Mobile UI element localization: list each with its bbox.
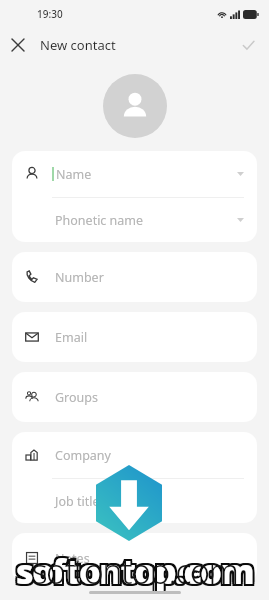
staticText: softontop.com: [0, 548, 267, 594]
staticText: Job title: [55, 493, 100, 510]
button[interactable]: Number: [12, 252, 257, 302]
staticText: softontop.com: [2, 550, 269, 596]
button[interactable]: Notes: [12, 533, 257, 583]
staticText: softontop.com: [2, 546, 269, 592]
staticText: softontop.com: [0, 548, 269, 594]
staticText: 19:30: [37, 7, 63, 21]
staticText: Groups: [55, 389, 98, 406]
staticText: Email: [55, 329, 88, 346]
button[interactable]: Save contact: [232, 29, 264, 61]
button[interactable]: Job title: [12, 479, 257, 523]
button[interactable]: Add contact photo: [103, 74, 167, 138]
staticText: softontop.com: [0, 550, 267, 596]
staticText: softontop.com: [2, 548, 269, 594]
button[interactable]: Email: [12, 312, 257, 362]
staticText: softontop.com: [0, 546, 269, 592]
staticText: Number: [55, 269, 104, 286]
staticText: Phonetic name: [55, 212, 144, 229]
button[interactable]: Name: [12, 151, 257, 197]
button[interactable]: Phonetic name: [12, 198, 257, 242]
staticText: Notes: [55, 550, 90, 567]
staticText: softontop.com: [0, 546, 267, 592]
staticText: Company: [55, 447, 111, 464]
button[interactable]: Close: [0, 28, 36, 62]
staticText: softontop.com: [0, 550, 269, 596]
staticText: softontop.com: [0, 548, 269, 594]
button[interactable]: Company: [12, 432, 257, 478]
staticText: Name: [56, 166, 92, 183]
button[interactable]: New contact: [40, 36, 116, 54]
button[interactable]: Groups: [12, 372, 257, 422]
